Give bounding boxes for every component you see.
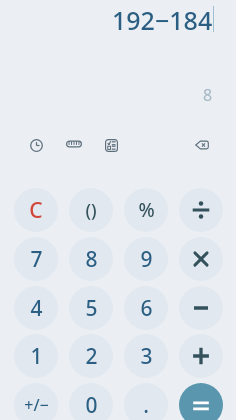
staticText: 192−184 — [112, 3, 213, 37]
staticText: 7 — [30, 245, 43, 274]
staticText: 3 — [140, 342, 153, 371]
button[interactable]: C — [14, 188, 58, 232]
button[interactable]: Divide — [179, 188, 223, 232]
button[interactable]: Unit converter — [60, 130, 88, 158]
button[interactable]: Minus — [179, 286, 223, 330]
button[interactable]: +/− — [14, 383, 58, 420]
staticText: 1 — [30, 342, 43, 371]
button[interactable]: 3 — [124, 334, 168, 378]
staticText: C — [29, 196, 43, 225]
staticText: 2 — [85, 342, 98, 371]
staticText: +/− — [24, 394, 49, 416]
button[interactable]: 1 — [14, 334, 58, 378]
staticText: . — [143, 391, 149, 420]
button[interactable]: 5 — [69, 286, 113, 330]
staticText: 6 — [140, 294, 153, 323]
button[interactable]: % — [124, 188, 168, 232]
staticText: 0 — [85, 391, 98, 420]
staticText: 8 — [203, 84, 213, 106]
button[interactable]: Equals — [179, 383, 223, 420]
button[interactable]: 0 — [69, 383, 113, 420]
staticText: 8 — [85, 245, 98, 274]
button[interactable]: History — [24, 133, 49, 158]
button[interactable]: 2 — [69, 334, 113, 378]
staticText: 5 — [85, 294, 98, 323]
button[interactable]: 6 — [124, 286, 168, 330]
staticText: 4 — [30, 294, 43, 323]
button[interactable]: . — [124, 383, 168, 420]
staticText: 9 — [140, 245, 153, 274]
button[interactable]: 7 — [14, 237, 58, 281]
staticText: () — [85, 198, 97, 223]
button[interactable]: Backspace — [189, 132, 215, 158]
button[interactable]: Multiply — [179, 237, 223, 281]
button[interactable]: 9 — [124, 237, 168, 281]
button[interactable]: Formulas — [99, 133, 124, 158]
button[interactable]: () — [69, 188, 113, 232]
button[interactable]: 4 — [14, 286, 58, 330]
button[interactable]: 8 — [69, 237, 113, 281]
staticText: % — [138, 197, 155, 223]
button[interactable]: Plus — [179, 334, 223, 378]
